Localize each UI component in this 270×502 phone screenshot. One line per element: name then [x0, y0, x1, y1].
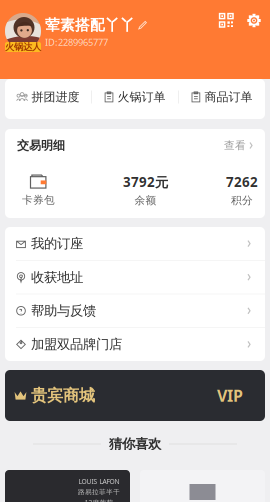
staticText: VIP	[217, 385, 243, 406]
button[interactable]: 商品订单	[179, 79, 265, 115]
staticText: 火锅订单	[117, 90, 165, 104]
staticText: 卡券包	[22, 193, 55, 206]
staticText: 路易拉菲半干	[78, 488, 120, 496]
staticText: 帮助与反馈	[31, 303, 96, 319]
staticText: 火锅达人	[5, 41, 41, 53]
staticText: 余额	[134, 194, 156, 207]
staticText: 拼团进度	[32, 90, 80, 104]
button[interactable]: 加盟双品牌门店	[5, 328, 265, 361]
button[interactable]: 交易明细	[5, 129, 265, 162]
staticText: 3792元	[123, 173, 168, 191]
button[interactable]: 二维码	[219, 13, 234, 28]
staticText: 积分	[231, 194, 253, 207]
button[interactable]: 收获地址	[5, 261, 265, 294]
staticText: 我的订座	[31, 235, 83, 252]
button[interactable]: 我的订座	[5, 227, 265, 260]
button[interactable]: 帮助与反馈	[5, 294, 265, 327]
staticText: 猜你喜欢	[109, 436, 161, 452]
staticText: ID:2289965777	[45, 36, 108, 48]
button[interactable]: 3792元	[72, 162, 219, 218]
staticText: 7262	[226, 173, 258, 191]
button[interactable]	[140, 470, 265, 502]
button[interactable]: 7262	[219, 162, 265, 218]
staticText: LOUIS LAFON	[78, 477, 119, 486]
staticText: 查看	[224, 139, 246, 152]
button[interactable]: 设置	[247, 13, 261, 27]
staticText: 收获地址	[31, 269, 83, 285]
button[interactable]: 火锅订单	[92, 79, 178, 115]
button[interactable]: LOUIS LAFON	[5, 470, 130, 502]
button[interactable]: 卡券包	[5, 162, 72, 218]
button[interactable]: 贵宾商城	[5, 370, 265, 421]
staticText: 13度葡萄	[84, 498, 113, 502]
staticText: 贵宾商城	[31, 386, 95, 405]
staticText: 商品订单	[204, 90, 252, 104]
staticText: 荤素搭配丫丫	[45, 16, 135, 34]
staticText: 加盟双品牌门店	[31, 336, 122, 353]
staticText: 交易明细	[17, 138, 65, 153]
button[interactable]: 拼团进度	[5, 79, 91, 115]
